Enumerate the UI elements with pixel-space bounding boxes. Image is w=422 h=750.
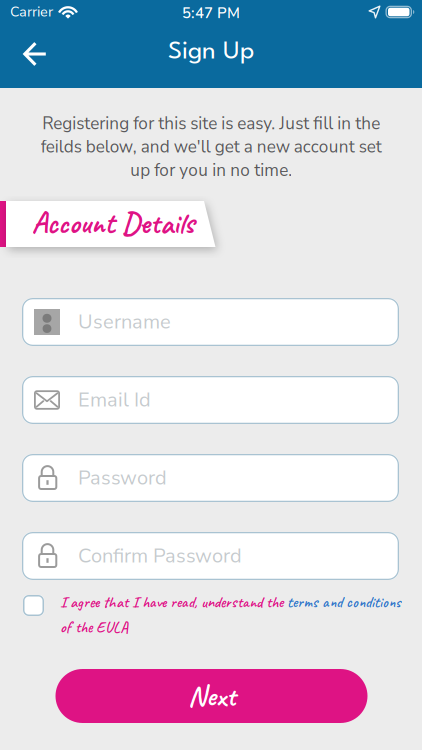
button[interactable]: I agree to the terms and conditions bbox=[23, 595, 44, 616]
staticText: Registering for this site is easy. Just … bbox=[40, 112, 381, 182]
button[interactable]: Confirm Password bbox=[22, 532, 399, 580]
staticText: I agree that I have read, understand the bbox=[60, 592, 287, 612]
staticText: of the EULA bbox=[60, 617, 128, 637]
button[interactable]: Email Id bbox=[22, 376, 399, 424]
staticText: Username bbox=[78, 308, 171, 336]
staticText: Password bbox=[78, 464, 167, 492]
button[interactable]: Username bbox=[22, 298, 399, 346]
staticText: Email Id bbox=[78, 386, 151, 414]
staticText: Next bbox=[188, 678, 235, 714]
staticText: terms and conditions bbox=[287, 592, 401, 612]
staticText: Confirm Password bbox=[78, 542, 242, 570]
staticText: 5:47 PM bbox=[182, 3, 240, 23]
staticText: Sign Up bbox=[168, 40, 254, 64]
button[interactable]: Password bbox=[22, 454, 399, 502]
button[interactable]: terms and conditions bbox=[287, 592, 401, 612]
button[interactable]: Next bbox=[55, 669, 367, 723]
staticText: Carrier bbox=[10, 2, 53, 22]
button[interactable]: Back bbox=[11, 32, 59, 76]
staticText: Account Details bbox=[32, 204, 195, 242]
